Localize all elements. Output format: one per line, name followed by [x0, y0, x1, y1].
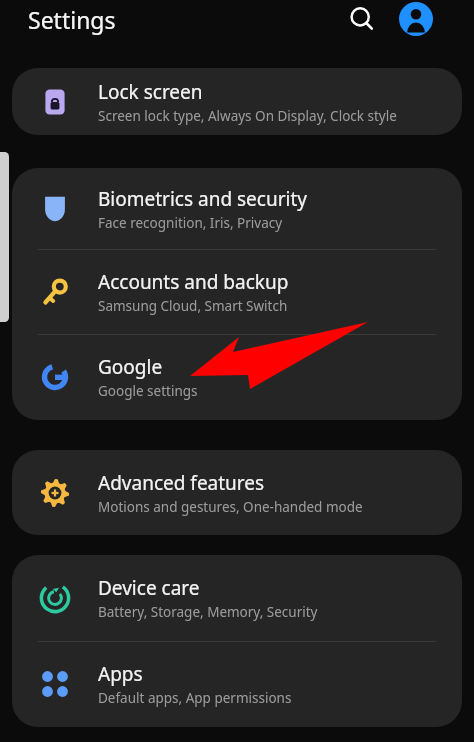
button[interactable]: Apps [12, 641, 462, 727]
staticText: Samsung Cloud, Smart Switch [98, 297, 288, 315]
staticText: Advanced features [98, 470, 265, 496]
staticText: Accounts and backup [98, 269, 289, 295]
staticText: Lock screen [98, 79, 203, 105]
staticText: Apps [98, 661, 143, 687]
button[interactable]: Lock screen [12, 68, 462, 135]
staticText: Face recognition, Iris, Privacy [98, 214, 283, 232]
staticText: Battery, Storage, Memory, Security [98, 603, 318, 621]
button[interactable]: Search [340, 0, 384, 41]
button[interactable]: Advanced features [12, 450, 462, 535]
staticText: Screen lock type, Always On Display, Clo… [98, 107, 397, 125]
staticText: Default apps, App permissions [98, 689, 292, 707]
staticText: Device care [98, 575, 200, 601]
button[interactable]: Accounts and backup [12, 249, 462, 334]
staticText: Settings [28, 4, 116, 35]
staticText: Biometrics and security [98, 186, 308, 212]
staticText: Google settings [98, 382, 198, 400]
button[interactable]: Google [12, 334, 462, 420]
button[interactable]: Biometrics and security [12, 168, 462, 249]
staticText: Motions and gestures, One-handed mode [98, 498, 363, 516]
staticText: Google [98, 354, 163, 380]
button[interactable]: Account [396, 0, 436, 39]
button[interactable]: Device care [12, 555, 462, 641]
